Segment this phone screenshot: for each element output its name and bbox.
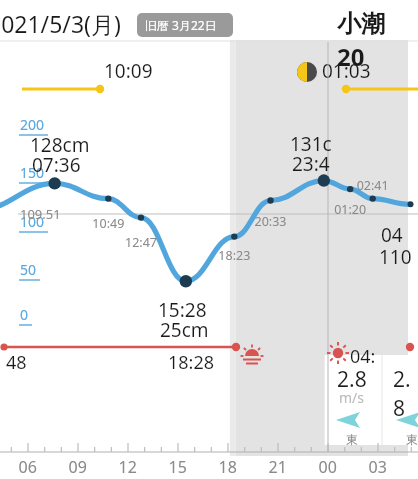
button[interactable]: Tide chart [0,0,418,479]
